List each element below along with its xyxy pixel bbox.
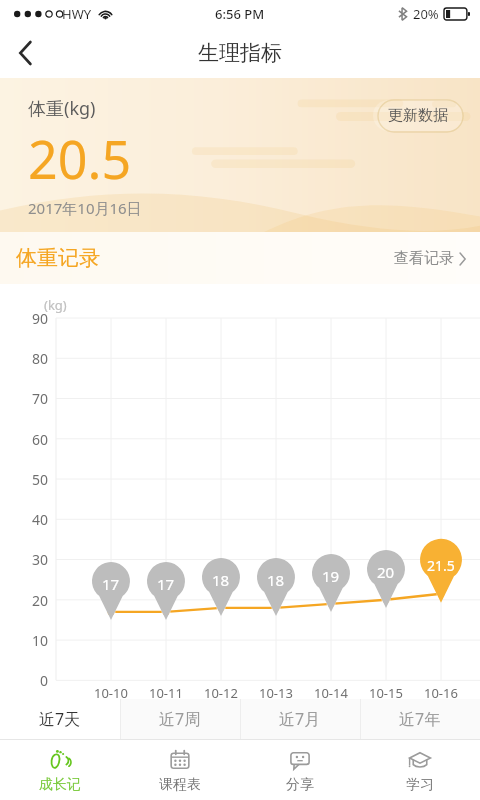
staticText: 20%: [413, 5, 439, 23]
staticText: 18: [267, 570, 285, 590]
staticText: 体重(kg): [28, 96, 96, 121]
button[interactable]: 课程表: [120, 740, 240, 800]
staticText: 更新数据: [388, 106, 448, 125]
button[interactable]: 查看记录: [394, 249, 480, 268]
button[interactable]: 近7月: [240, 699, 360, 739]
staticText: HWY: [62, 5, 92, 23]
staticText: 10-11: [149, 684, 183, 699]
button[interactable]: 近7年: [360, 699, 480, 739]
staticText: 90: [0, 309, 48, 328]
staticText: 近7天: [39, 708, 81, 730]
button[interactable]: 成长记: [0, 740, 120, 800]
staticText: 10-12: [204, 684, 238, 699]
staticText: 课程表: [159, 776, 201, 794]
staticText: 生理指标: [198, 40, 282, 66]
staticText: 6:56 PM: [215, 5, 265, 23]
staticText: 10-16: [424, 684, 458, 699]
staticText: 30: [0, 550, 48, 569]
staticText: 查看记录: [394, 249, 454, 268]
staticText: 60: [0, 430, 48, 449]
staticText: 40: [0, 510, 48, 529]
button[interactable]: 近7天: [0, 699, 120, 739]
button[interactable]: 近7周: [120, 699, 240, 739]
staticText: 10: [0, 631, 48, 650]
staticText: 学习: [406, 776, 434, 794]
staticText: 21.5: [427, 556, 455, 575]
staticText: 80: [0, 349, 48, 368]
staticText: 0: [0, 671, 48, 690]
button[interactable]: 分享: [240, 740, 360, 800]
staticText: 2017年10月16日: [28, 198, 142, 218]
staticText: 10-15: [369, 684, 403, 699]
staticText: 10-10: [94, 684, 128, 699]
staticText: 体重记录: [16, 245, 100, 271]
staticText: 17: [157, 574, 175, 594]
staticText: (kg): [44, 296, 67, 314]
staticText: 17: [102, 574, 120, 594]
button[interactable]: Back: [0, 28, 50, 78]
staticText: 20.5: [28, 123, 132, 194]
staticText: 10-14: [314, 684, 348, 699]
staticText: 分享: [286, 776, 314, 794]
staticText: 20: [377, 562, 395, 582]
staticText: 近7月: [279, 708, 321, 730]
staticText: 近7年: [399, 708, 441, 730]
staticText: 近7周: [159, 708, 201, 730]
staticText: 50: [0, 470, 48, 489]
staticText: 18: [212, 570, 230, 590]
staticText: 10-13: [259, 684, 293, 699]
staticText: 70: [0, 389, 48, 408]
button[interactable]: 学习: [360, 740, 480, 800]
staticText: 成长记: [39, 776, 81, 794]
staticText: 20: [0, 591, 48, 610]
button[interactable]: 更新数据: [373, 100, 463, 131]
staticText: 19: [322, 566, 340, 586]
